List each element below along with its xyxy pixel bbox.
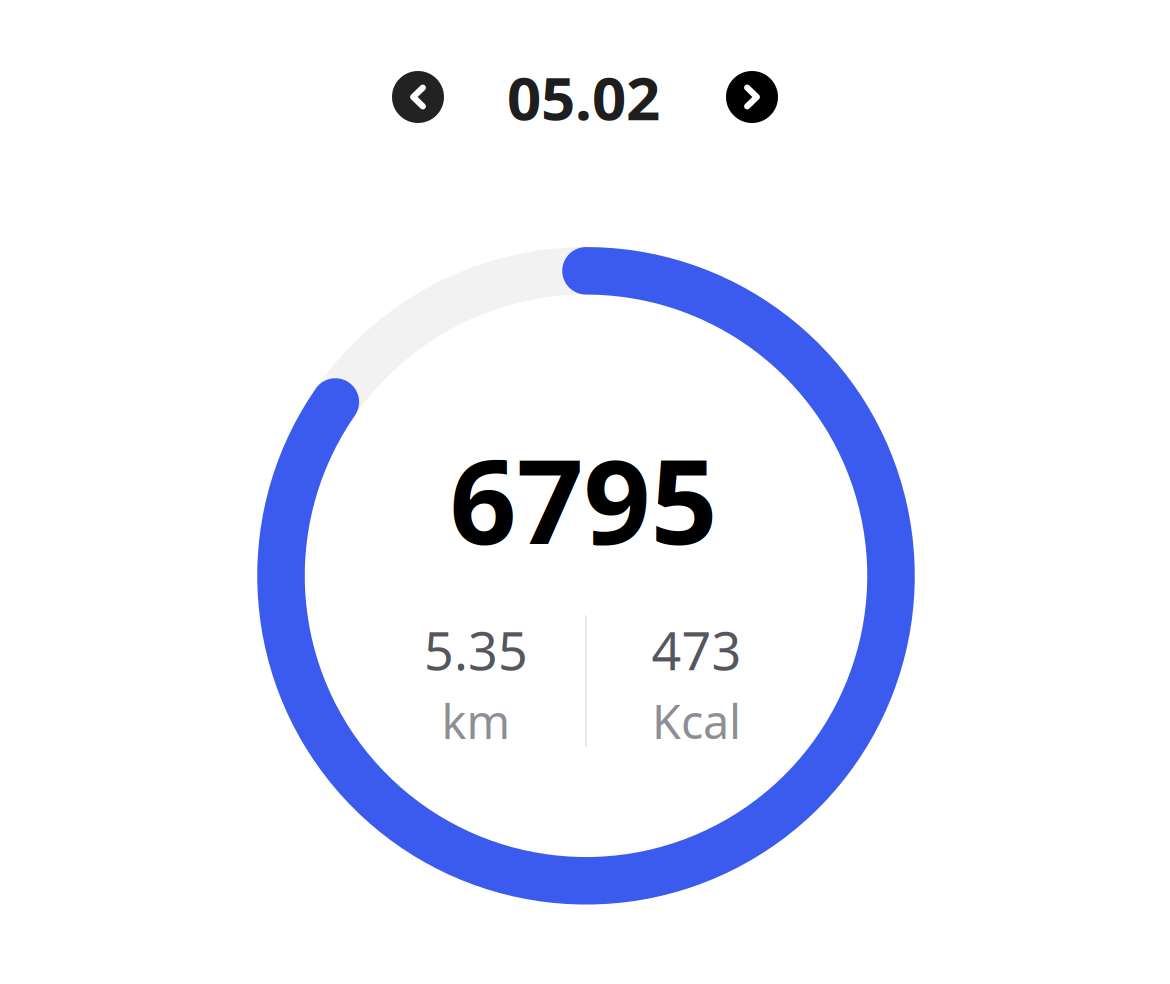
button[interactable]: 05.02 xyxy=(507,57,660,137)
staticText: 473 xyxy=(651,615,741,685)
button[interactable]: Next day xyxy=(726,71,778,123)
staticText: 5.35 xyxy=(424,615,528,685)
staticText: Kcal xyxy=(652,690,741,752)
button[interactable]: Previous day xyxy=(392,71,444,123)
staticText: 05.02 xyxy=(507,57,660,137)
staticText: km xyxy=(441,690,510,752)
staticText: 6795 xyxy=(449,421,717,577)
